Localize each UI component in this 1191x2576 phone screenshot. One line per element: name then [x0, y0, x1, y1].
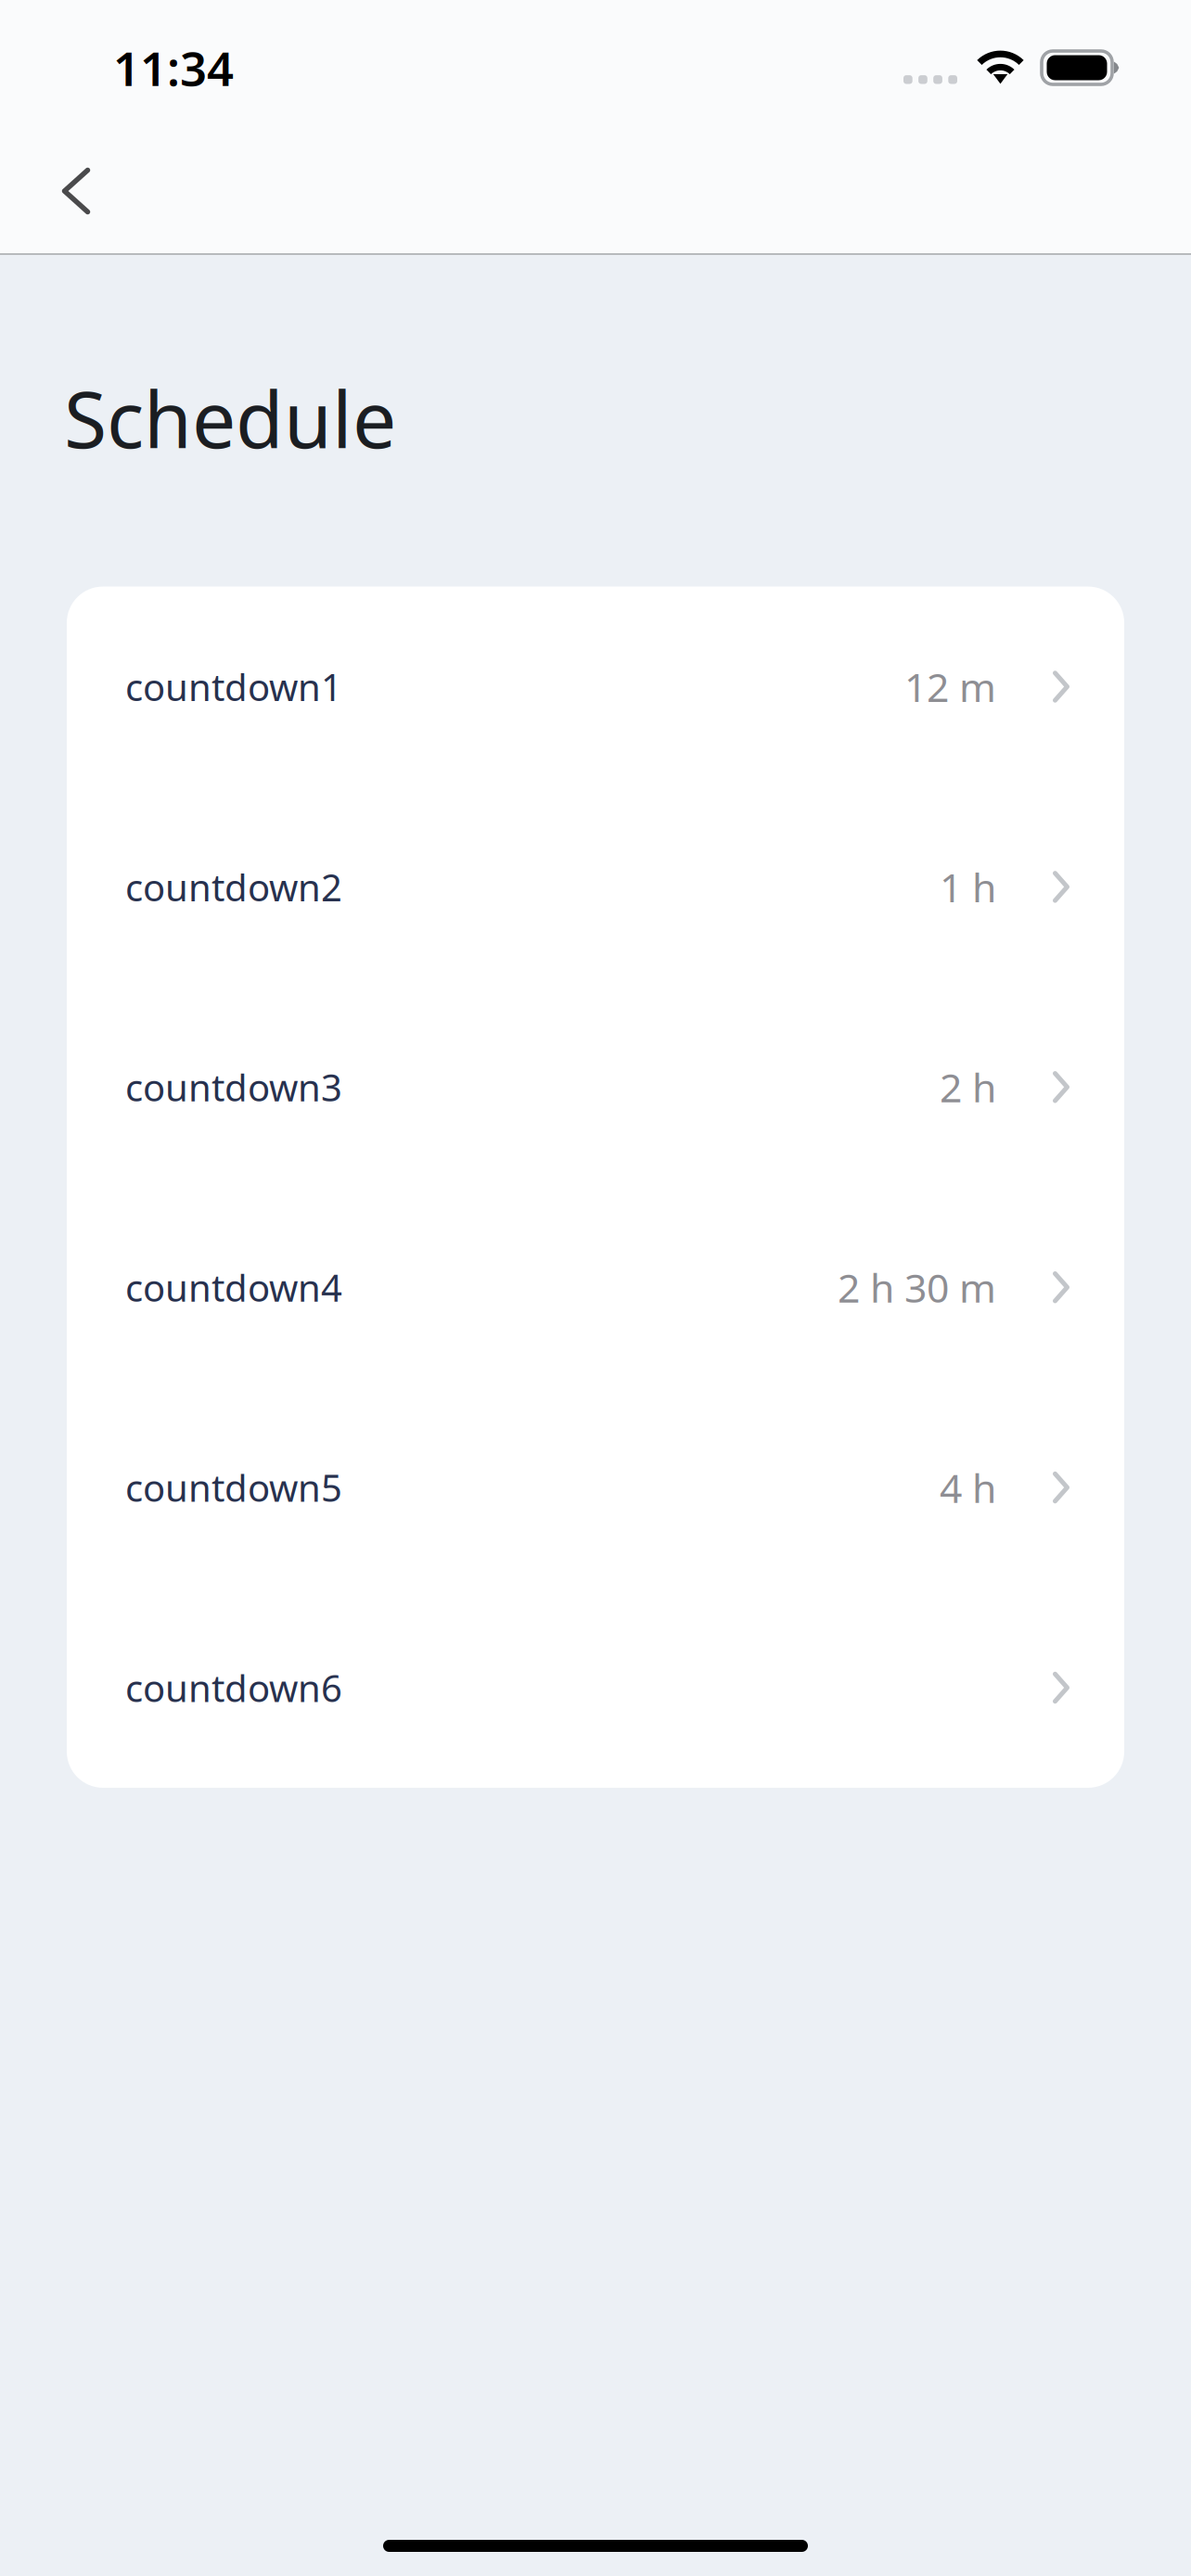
button[interactable]: countdown5 — [67, 1387, 1124, 1588]
button[interactable]: countdown4 — [67, 1187, 1124, 1387]
staticText: countdown5 — [125, 1463, 342, 1512]
staticText: 4 h — [940, 1461, 996, 1514]
button[interactable]: countdown3 — [67, 987, 1124, 1187]
staticText: countdown4 — [125, 1263, 342, 1312]
button[interactable]: Back — [32, 147, 121, 236]
staticText: countdown1 — [125, 662, 342, 711]
staticText: 1 h — [940, 861, 996, 913]
staticText: countdown3 — [125, 1062, 342, 1112]
staticText: countdown6 — [125, 1663, 342, 1712]
staticText: 2 h 30 m — [838, 1261, 996, 1314]
staticText: 12 m — [904, 660, 996, 713]
button[interactable]: countdown1 — [67, 587, 1124, 787]
button[interactable]: countdown2 — [67, 787, 1124, 987]
staticText: 11:34 — [113, 37, 234, 99]
staticText: 2 h — [940, 1061, 996, 1113]
staticText: countdown2 — [125, 862, 342, 911]
button[interactable]: countdown6 — [67, 1588, 1124, 1788]
staticText: Schedule — [64, 366, 396, 470]
